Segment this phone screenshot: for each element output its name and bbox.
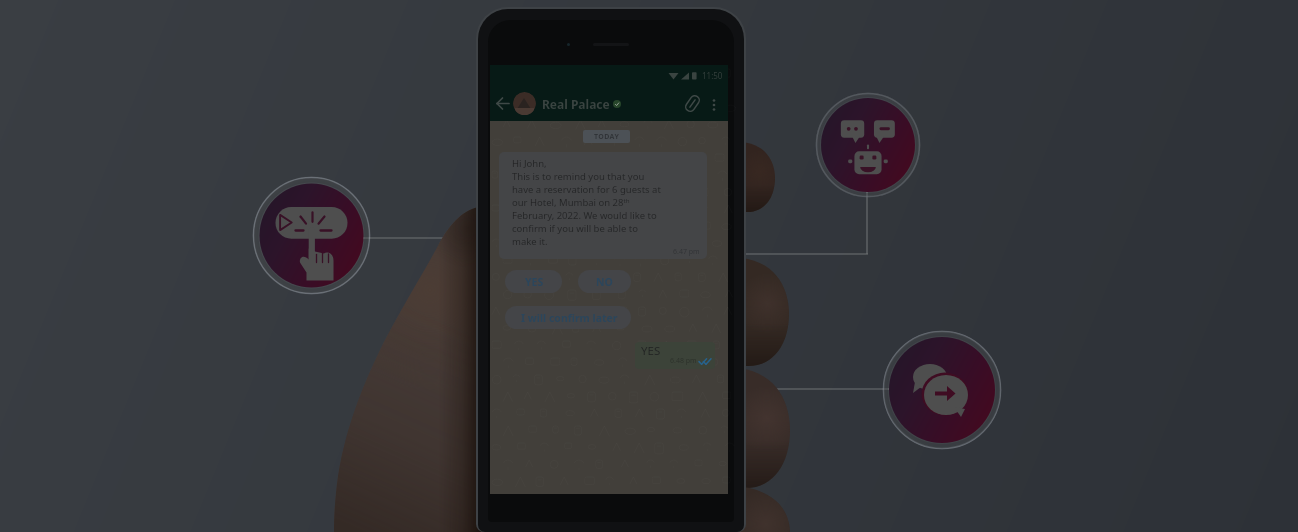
staticText: 11:50	[702, 70, 723, 81]
button[interactable]: Feature highlight	[882, 330, 1002, 450]
staticText: Hi John, This is to remind you that you …	[512, 157, 661, 248]
button[interactable]: Back	[495, 95, 512, 112]
staticText: 6.48 pm	[670, 356, 697, 366]
button[interactable]: I will confirm later	[505, 306, 631, 329]
button[interactable]: Feature highlight	[252, 176, 371, 295]
staticText: YES	[641, 343, 661, 359]
staticText: NO	[596, 275, 613, 289]
button[interactable]: More options	[707, 97, 721, 111]
staticText: Real Palace	[542, 96, 610, 112]
staticText: YES	[525, 275, 544, 289]
button[interactable]: NO	[578, 270, 631, 293]
button[interactable]: YES	[505, 270, 562, 293]
staticText: TODAY	[594, 132, 620, 142]
staticText: I will confirm later	[521, 311, 618, 325]
staticText: 6.47 pm	[673, 247, 700, 257]
button[interactable]: Attach	[683, 94, 702, 113]
button[interactable]: Feature highlight	[815, 92, 921, 198]
